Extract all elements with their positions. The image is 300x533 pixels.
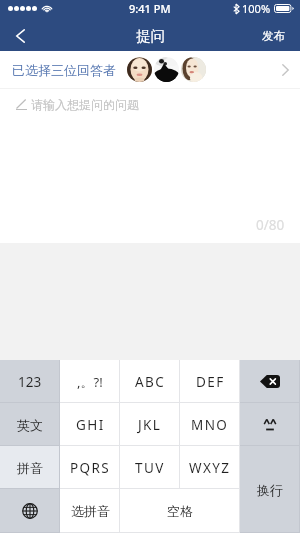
- button[interactable]: 发布: [248, 22, 300, 51]
- button[interactable]: DEF: [180, 360, 240, 403]
- button[interactable]: 选拼音: [60, 489, 120, 533]
- button[interactable]: 换行: [240, 446, 300, 533]
- staticText: MNO: [191, 416, 229, 434]
- staticText: PQRS: [70, 459, 111, 477]
- staticText: 选拼音: [71, 503, 110, 519]
- button[interactable]: Switch keyboard: [0, 489, 60, 533]
- staticText: 空格: [167, 503, 193, 519]
- button[interactable]: Emoji: [240, 403, 300, 446]
- button[interactable]: ,。?!: [60, 360, 120, 403]
- staticText: 提问: [136, 27, 165, 45]
- staticText: GHI: [76, 416, 105, 434]
- button[interactable]: 已选择三位回答者: [0, 51, 300, 88]
- staticText: 换行: [257, 482, 283, 498]
- button[interactable]: WXYZ: [180, 446, 240, 489]
- button[interactable]: Backspace: [240, 360, 300, 403]
- button[interactable]: PQRS: [60, 446, 120, 489]
- staticText: WXYZ: [189, 459, 231, 477]
- button[interactable]: GHI: [60, 403, 120, 446]
- staticText: 9:41 PM: [129, 1, 171, 16]
- button[interactable]: TUV: [120, 446, 180, 489]
- button[interactable]: JKL: [120, 403, 180, 446]
- button[interactable]: 123: [0, 360, 60, 403]
- button[interactable]: 英文: [0, 403, 60, 446]
- staticText: 请输入想提问的问题: [31, 97, 139, 112]
- button[interactable]: MNO: [180, 403, 240, 446]
- staticText: 已选择三位回答者: [12, 62, 116, 78]
- staticText: 0/80: [256, 216, 285, 234]
- staticText: 英文: [17, 417, 43, 433]
- staticText: 100%: [242, 1, 271, 16]
- button[interactable]: Back: [0, 22, 40, 51]
- staticText: JKL: [138, 416, 162, 434]
- button[interactable]: 空格: [120, 489, 240, 533]
- staticText: TUV: [135, 459, 165, 477]
- staticText: ABC: [135, 373, 166, 391]
- staticText: 123: [18, 373, 42, 391]
- button[interactable]: 拼音: [0, 446, 60, 489]
- button[interactable]: ABC: [120, 360, 180, 403]
- staticText: ,。?!: [77, 373, 103, 391]
- staticText: 发布: [262, 29, 285, 43]
- staticText: DEF: [196, 373, 225, 391]
- staticText: 拼音: [17, 460, 43, 476]
